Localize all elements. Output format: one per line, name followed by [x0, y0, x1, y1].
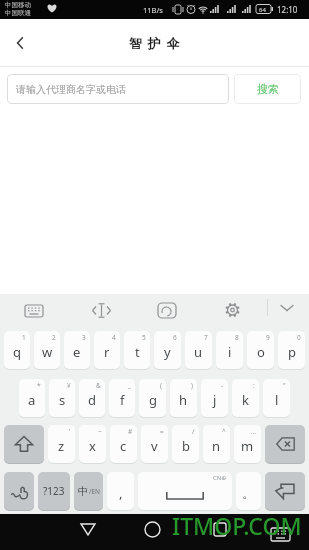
button[interactable]: 。	[236, 472, 261, 510]
button[interactable]: 请输入代理商名字或电话	[7, 74, 229, 104]
staticText: r	[104, 343, 110, 361]
button[interactable]: c	[110, 425, 137, 463]
button[interactable]	[265, 425, 305, 463]
staticText: 64	[259, 6, 266, 14]
button[interactable]: k	[232, 379, 259, 417]
staticText: 中国联通	[5, 9, 31, 17]
button[interactable]: h	[170, 379, 197, 417]
staticText: y	[164, 343, 171, 361]
staticText: n	[212, 437, 221, 455]
staticText: 中	[78, 485, 89, 498]
staticText: a	[28, 391, 36, 409]
button[interactable]: j	[201, 379, 228, 417]
staticText: j	[213, 391, 217, 409]
button[interactable]: 中	[74, 472, 103, 510]
button[interactable]	[80, 523, 96, 536]
button[interactable]: z	[48, 425, 75, 463]
button[interactable]: x	[79, 425, 106, 463]
staticText: t	[135, 343, 140, 361]
staticText: 7	[204, 333, 208, 342]
button[interactable]: t	[124, 331, 150, 369]
button[interactable]	[271, 528, 290, 541]
button[interactable]	[8, 31, 32, 55]
staticText: 3	[82, 333, 86, 342]
button[interactable]: l	[263, 379, 290, 417]
button[interactable]: s	[49, 379, 75, 417]
button[interactable]: ?123	[38, 472, 70, 510]
button[interactable]: m	[234, 425, 261, 463]
staticText: '	[69, 427, 71, 436]
button[interactable]: ,	[107, 472, 134, 510]
staticText: w	[42, 343, 53, 361]
staticText: i	[228, 343, 232, 361]
button[interactable]	[4, 425, 44, 463]
button[interactable]: r	[94, 331, 120, 369]
staticText: x	[89, 437, 96, 455]
button[interactable]: CN⊕	[138, 472, 232, 510]
staticText: ~	[98, 427, 102, 436]
button[interactable]: g	[139, 379, 166, 417]
button[interactable]: a	[19, 379, 45, 417]
staticText: 。	[242, 485, 255, 501]
staticText: /EN	[89, 487, 100, 496]
button[interactable]	[224, 302, 241, 318]
button[interactable]	[92, 303, 111, 318]
button[interactable]	[265, 472, 305, 510]
staticText: *	[37, 381, 41, 390]
button[interactable]: p	[278, 331, 305, 369]
staticText: 2	[52, 333, 56, 342]
button[interactable]	[213, 522, 227, 537]
button[interactable]: y	[154, 331, 181, 369]
staticText: 6	[173, 333, 177, 342]
staticText: :	[253, 381, 255, 390]
staticText: ¥	[67, 381, 71, 390]
button[interactable]: v	[141, 425, 168, 463]
staticText: u	[194, 343, 203, 361]
staticText: d	[88, 391, 96, 409]
staticText: m	[241, 437, 254, 455]
staticText: 11B/s	[143, 5, 163, 15]
staticText: s	[59, 391, 66, 409]
button[interactable]	[158, 303, 176, 318]
staticText: /	[192, 427, 195, 436]
button[interactable]: w	[34, 331, 60, 369]
staticText: c	[120, 437, 127, 455]
button[interactable]: n	[203, 425, 230, 463]
staticText: (	[160, 381, 162, 390]
button[interactable]	[4, 472, 34, 510]
staticText: e	[73, 343, 81, 361]
button[interactable]: o	[247, 331, 274, 369]
button[interactable]	[144, 521, 161, 538]
staticText: ?123	[43, 484, 65, 498]
button[interactable]: q	[4, 331, 30, 369]
staticText: f	[120, 391, 125, 409]
button[interactable]: d	[79, 379, 105, 417]
staticText: 中国移动	[5, 1, 31, 9]
staticText: g	[149, 391, 157, 409]
staticText: ^	[222, 427, 226, 436]
staticText: z	[58, 437, 65, 455]
button[interactable]: u	[185, 331, 212, 369]
button[interactable]	[25, 305, 43, 317]
staticText: 8	[235, 333, 239, 342]
staticText: k	[242, 391, 249, 409]
button[interactable]	[280, 304, 294, 312]
button[interactable]: 搜索	[234, 74, 301, 104]
staticText: "	[283, 381, 286, 390]
button[interactable]: i	[216, 331, 243, 369]
staticText: b	[182, 437, 190, 455]
button[interactable]: e	[64, 331, 90, 369]
staticText: 智 护 伞	[129, 34, 181, 52]
staticText: v	[151, 437, 158, 455]
staticText: o	[257, 343, 265, 361]
staticText: 0	[297, 333, 301, 342]
staticText: l	[275, 391, 279, 409]
button[interactable]: f	[109, 379, 135, 417]
staticText: 搜索	[257, 82, 279, 96]
staticText: 5	[142, 333, 146, 342]
staticText: 4	[112, 333, 116, 342]
staticText: 12:10	[277, 4, 298, 15]
staticText: _	[128, 381, 131, 390]
staticText: ITMOP.COM	[172, 510, 302, 541]
button[interactable]: b	[172, 425, 199, 463]
